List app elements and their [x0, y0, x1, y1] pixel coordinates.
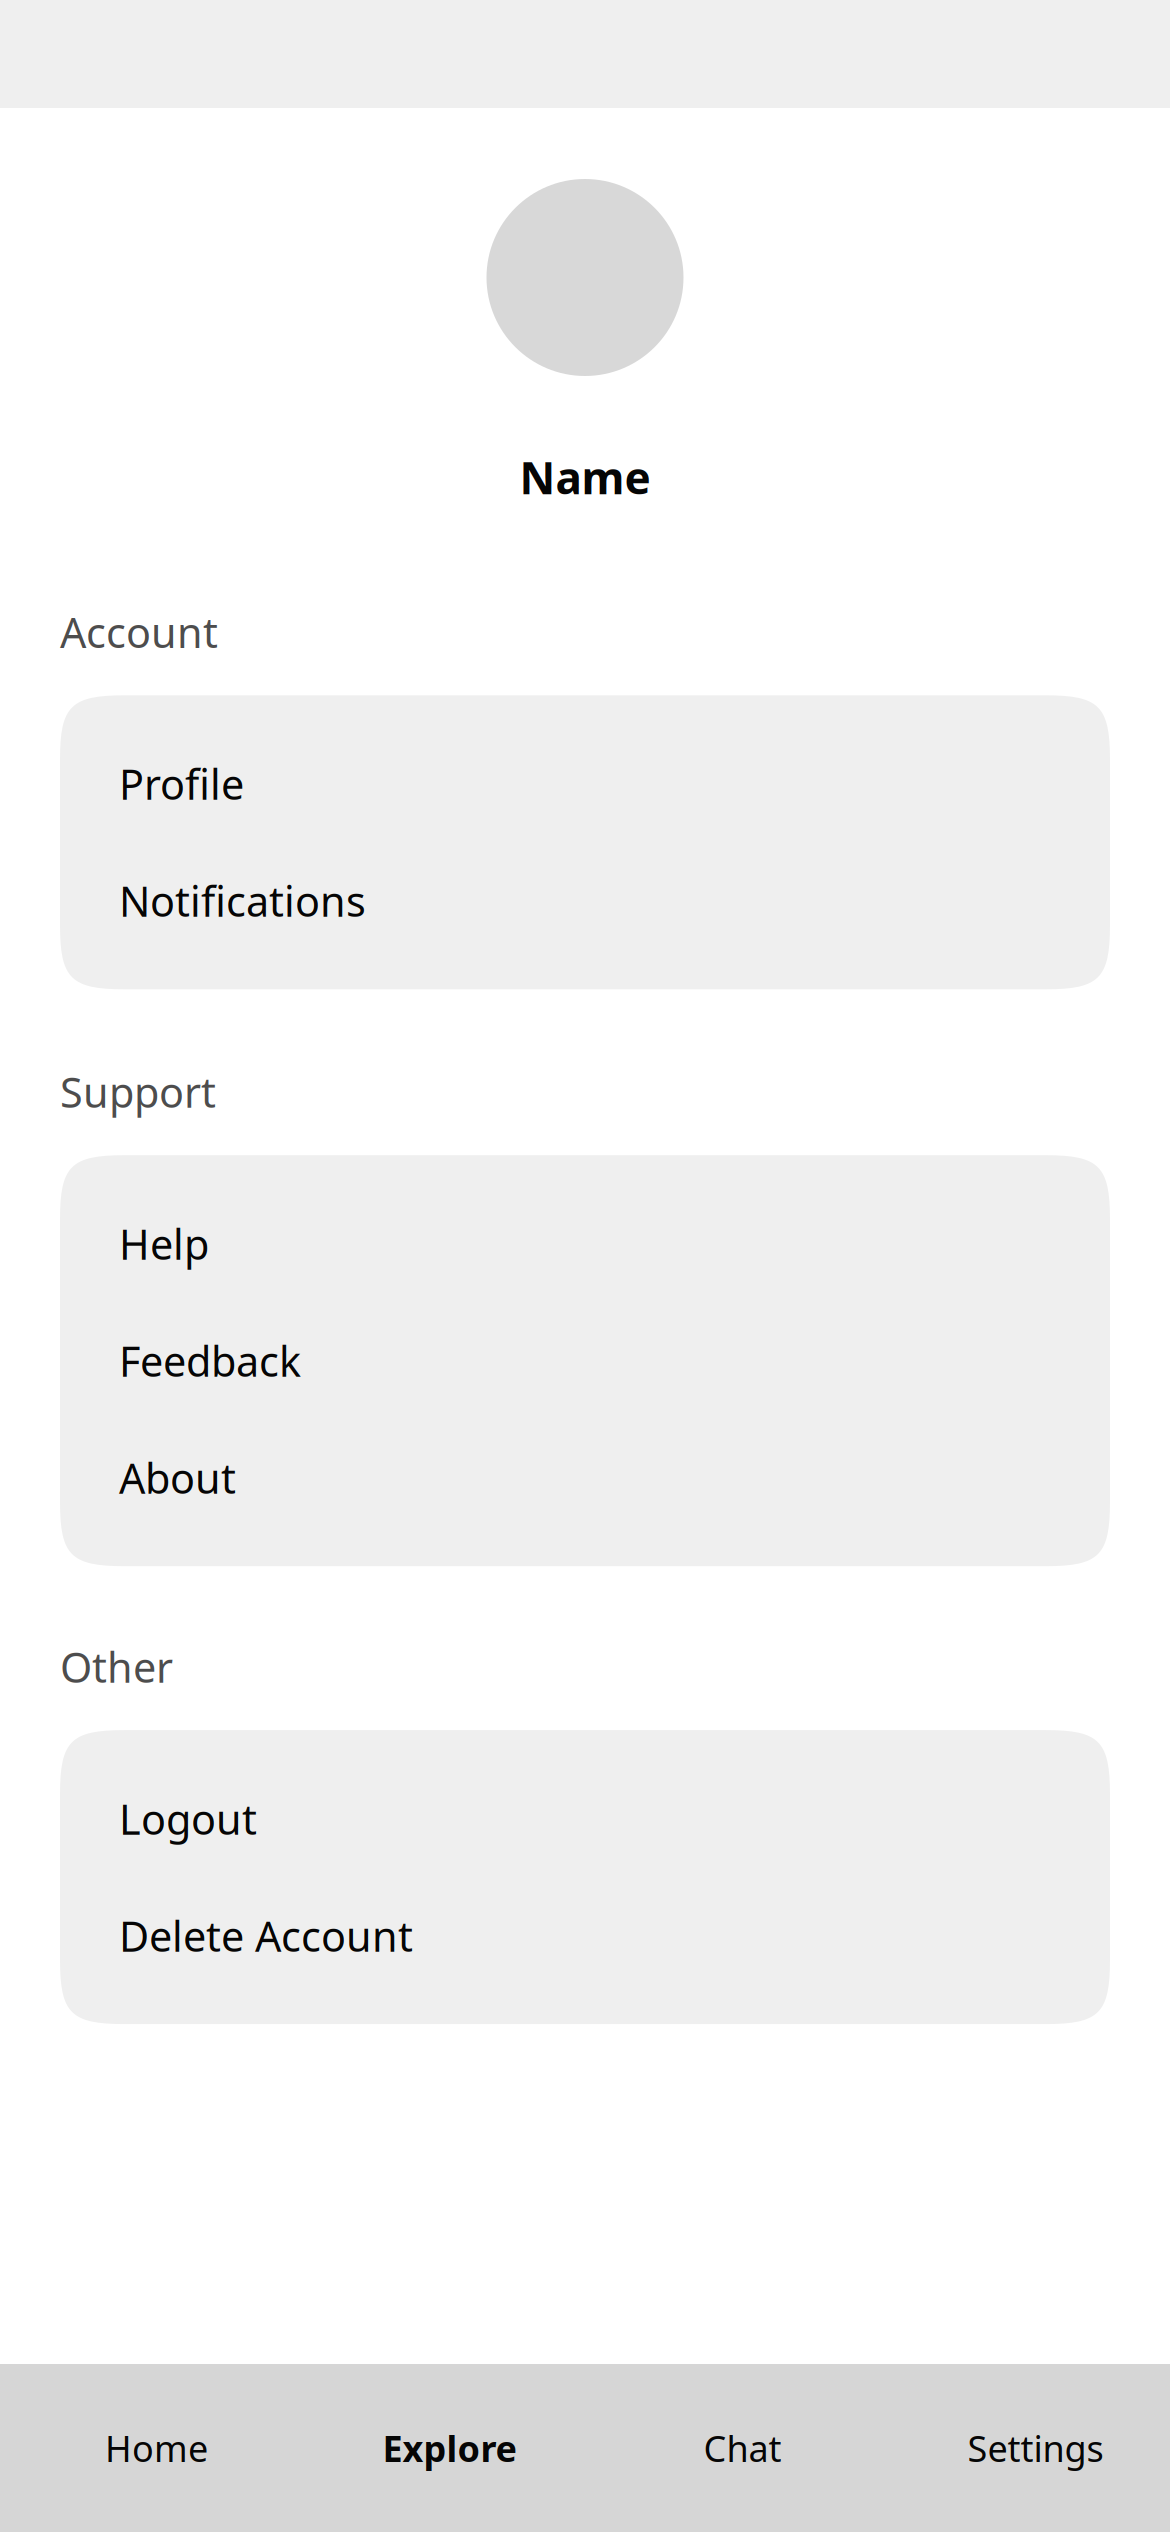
staticText: Delete Account — [119, 1908, 413, 1963]
button[interactable]: Profile — [60, 725, 1110, 842]
staticText: Home — [105, 2424, 208, 2472]
staticText: Support — [60, 1064, 216, 1119]
button[interactable]: Help — [60, 1185, 1110, 1302]
staticText: Chat — [703, 2424, 781, 2472]
staticText: Name — [519, 448, 650, 506]
staticText: Settings — [967, 2424, 1103, 2472]
button[interactable]: Explore — [303, 2364, 596, 2532]
button[interactable]: About — [60, 1419, 1110, 1536]
staticText: Explore — [382, 2424, 516, 2472]
button[interactable]: Logout — [60, 1760, 1110, 1877]
button[interactable]: Chat — [596, 2364, 889, 2532]
staticText: Help — [119, 1216, 209, 1271]
button[interactable]: Settings — [889, 2364, 1170, 2532]
staticText: Logout — [119, 1791, 257, 1846]
button[interactable]: Home — [10, 2364, 303, 2532]
button[interactable]: Notifications — [60, 842, 1110, 959]
staticText: Account — [60, 604, 218, 659]
staticText: Profile — [119, 756, 244, 811]
staticText: Other — [60, 1639, 173, 1694]
button[interactable]: Delete Account — [60, 1877, 1110, 1994]
staticText: Feedback — [119, 1333, 301, 1388]
staticText: About — [119, 1450, 236, 1505]
staticText: Notifications — [119, 873, 366, 928]
button[interactable]: Feedback — [60, 1302, 1110, 1419]
